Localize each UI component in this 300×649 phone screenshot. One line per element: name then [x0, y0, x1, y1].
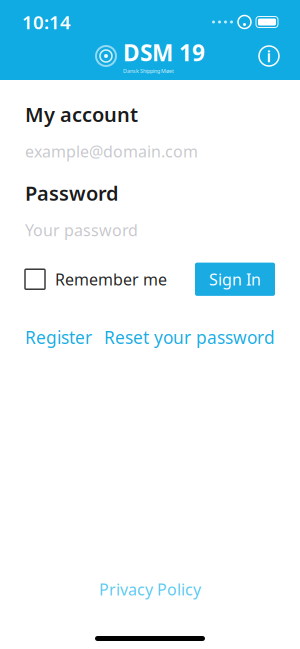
staticText: Password	[25, 180, 119, 206]
staticText: 10:14	[22, 10, 71, 34]
staticText: Your password	[25, 219, 138, 241]
staticText: Dansk Shipping Møet	[123, 67, 174, 75]
button[interactable]: Reset your password	[104, 322, 275, 353]
staticText: My account	[25, 101, 138, 128]
button[interactable]: Register	[25, 322, 92, 353]
button[interactable]: Information	[252, 39, 286, 73]
staticText: Remember me	[55, 269, 167, 290]
button[interactable]: Privacy Policy	[89, 573, 211, 606]
staticText: Privacy Policy	[99, 579, 201, 600]
staticText: example@domain.com	[25, 141, 198, 162]
staticText: i	[266, 45, 271, 67]
staticText: DSM 19	[123, 37, 205, 67]
staticText: Sign In	[209, 269, 261, 290]
button[interactable]: Sign In	[195, 263, 275, 296]
staticText: Reset your password	[104, 326, 275, 349]
button[interactable]: Remember me	[25, 265, 167, 294]
staticText: Register	[25, 326, 92, 349]
